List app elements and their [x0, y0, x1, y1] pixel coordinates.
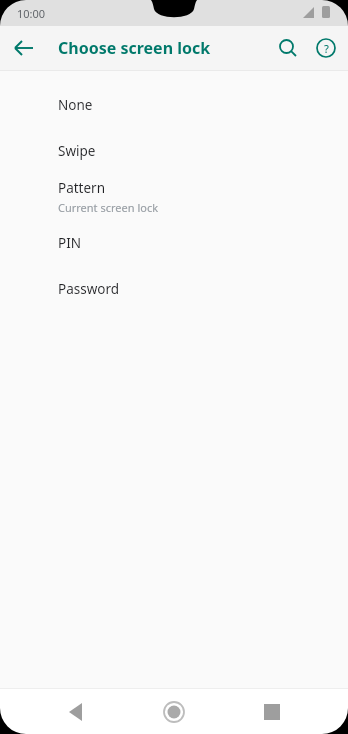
button[interactable]: None	[0, 82, 348, 128]
staticText: Pattern	[58, 179, 106, 197]
button[interactable]: Search	[272, 32, 304, 64]
button[interactable]: Back	[54, 690, 98, 734]
staticText: Current screen lock	[58, 200, 159, 215]
staticText: Password	[58, 280, 120, 298]
button[interactable]: PIN	[0, 220, 348, 266]
button[interactable]: Home	[152, 690, 196, 734]
button[interactable]: Swipe	[0, 128, 348, 174]
button[interactable]: Recent apps	[250, 690, 294, 734]
staticText: Swipe	[58, 142, 96, 160]
button[interactable]: Back	[8, 32, 40, 64]
staticText: None	[58, 96, 93, 114]
staticText: PIN	[58, 234, 82, 252]
button[interactable]: Help	[310, 32, 342, 64]
staticText: 10:00	[17, 6, 46, 21]
staticText: Choose screen lock	[58, 37, 211, 59]
button[interactable]: Pattern	[0, 174, 348, 220]
button[interactable]: Password	[0, 266, 348, 312]
staticText: ?	[324, 41, 329, 56]
